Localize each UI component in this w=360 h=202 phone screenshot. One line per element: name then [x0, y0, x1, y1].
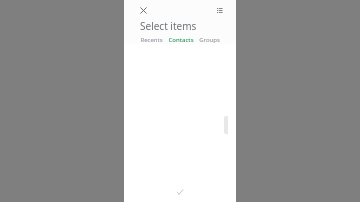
button[interactable]: Recents — [140, 36, 163, 44]
button[interactable]: Dialpad — [212, 3, 226, 17]
staticText: Recents — [140, 36, 163, 44]
button[interactable]: Close — [136, 3, 150, 17]
button[interactable]: Groups — [199, 36, 220, 44]
staticText: Select items — [140, 19, 197, 32]
button[interactable]: Contacts — [168, 36, 194, 44]
button[interactable]: Confirm selection — [173, 185, 187, 199]
staticText: Groups — [199, 36, 220, 44]
staticText: Contacts — [168, 36, 194, 44]
